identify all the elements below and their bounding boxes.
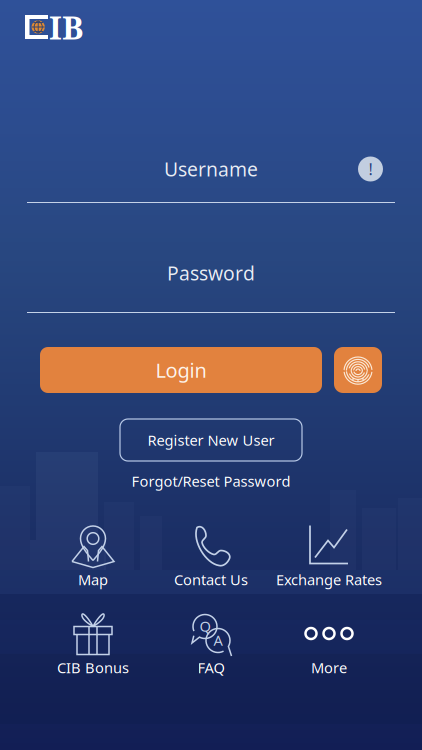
staticText: Password — [167, 260, 255, 286]
button[interactable]: Username help — [358, 156, 383, 181]
staticText: A — [213, 630, 222, 650]
button[interactable]: Contact Us — [152, 519, 270, 593]
button[interactable]: Q — [152, 607, 270, 681]
staticText: Q — [199, 616, 210, 636]
button[interactable]: More — [270, 607, 388, 681]
button[interactable]: Exchange Rates — [270, 519, 388, 593]
button[interactable]: Forgot/Reset Password — [131, 471, 290, 491]
staticText: Map — [78, 569, 108, 589]
staticText: IB — [49, 5, 84, 49]
staticText: FAQ — [197, 657, 224, 677]
staticText: Login — [155, 356, 206, 384]
staticText: Register New User — [147, 430, 274, 450]
button[interactable]: CIB Bonus — [34, 607, 152, 681]
staticText: More — [311, 657, 347, 677]
staticText: Contact Us — [174, 569, 248, 589]
button[interactable]: Login — [40, 347, 322, 393]
staticText: Exchange Rates — [276, 569, 382, 589]
staticText: CIB Bonus — [57, 657, 129, 677]
staticText: Forgot/Reset Password — [131, 471, 290, 491]
staticText: ! — [368, 158, 372, 180]
button[interactable]: Register New User — [120, 419, 302, 461]
button[interactable]: Sign in with Touch ID — [334, 347, 382, 393]
button[interactable]: Map — [34, 519, 152, 593]
staticText: Username — [164, 156, 258, 182]
